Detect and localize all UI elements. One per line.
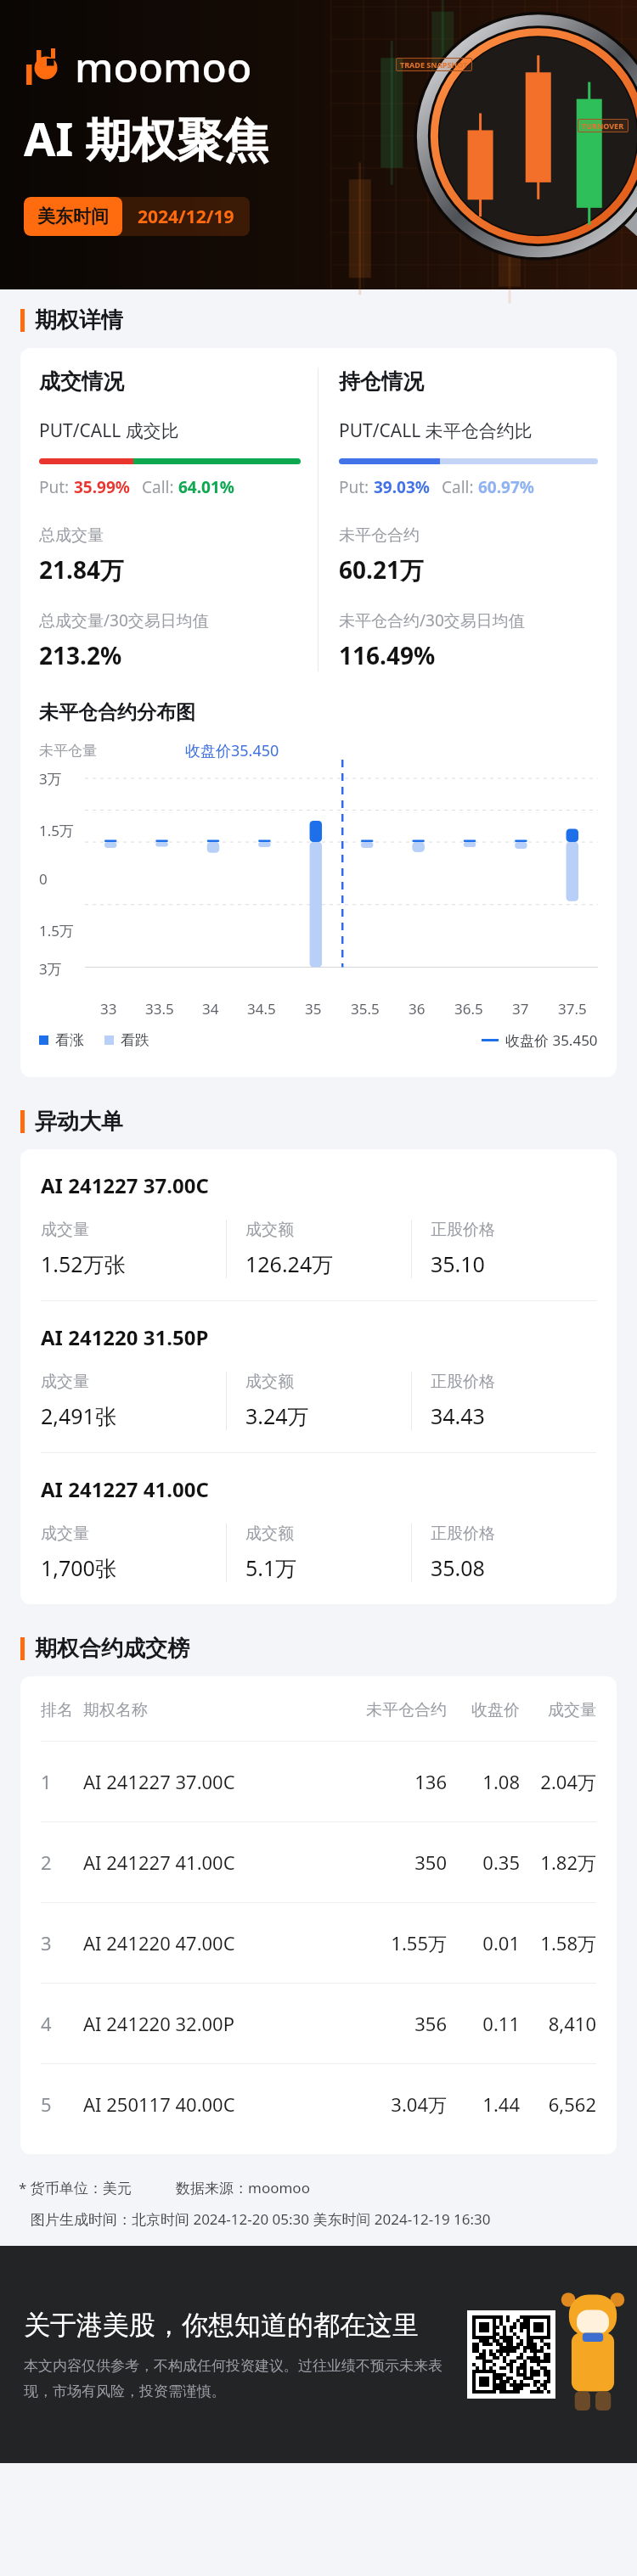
button[interactable]: AI 241220 31.50P [20, 1301, 617, 1453]
staticText: Put: [39, 476, 74, 498]
staticText: AI 241227 41.00C [83, 1849, 352, 1875]
staticText: PUT/CALL 未平仓合约比 [339, 418, 533, 443]
staticText: AI 期权聚焦 [24, 107, 269, 170]
staticText: 1.52万张 [41, 1249, 126, 1278]
staticText: 1 [41, 1769, 83, 1794]
staticText: 成交情况 [39, 368, 124, 395]
staticText: 1,700张 [41, 1553, 116, 1582]
staticText: 35.10 [431, 1249, 485, 1278]
staticText: 正股价格 [431, 1524, 495, 1544]
staticText: 未平仓合约/30交易日均值 [339, 609, 525, 631]
staticText: 3万 [39, 959, 62, 979]
staticText: 21.84万 [39, 553, 124, 586]
staticText: AI 241220 31.50P [41, 1323, 209, 1351]
staticText: 0.01 [447, 1930, 520, 1956]
staticText: 1.5万 [39, 921, 75, 940]
staticText: 收盘价35.450 [185, 740, 279, 761]
staticText: 看涨 [55, 1031, 84, 1049]
button[interactable]: AI 241227 37.00C [20, 1149, 617, 1301]
staticText: 5 [41, 2091, 83, 2117]
staticText: 未平仓合约 [339, 525, 420, 546]
staticText: 关于港美股，你想知道的都在这里 [24, 2309, 419, 2342]
staticText: 3.04万 [352, 2091, 447, 2117]
staticText: 37.5 [558, 999, 587, 1019]
staticText: AI 241227 37.00C [83, 1769, 352, 1794]
staticText: 36.5 [454, 999, 483, 1019]
staticText: 33.5 [145, 999, 174, 1019]
staticText: 3.24万 [245, 1401, 309, 1430]
staticText: 4 [41, 2011, 83, 2036]
staticText: 34.5 [247, 999, 276, 1019]
staticText: 未平仓合约 [352, 1700, 447, 1720]
staticText: 1.82万 [520, 1849, 596, 1875]
staticText: 3 [41, 1930, 83, 1956]
button[interactable]: moomoo logo [25, 39, 252, 94]
staticText: 1.44 [447, 2091, 520, 2117]
button[interactable]: 3 [41, 1903, 596, 1983]
staticText: 异动大单 [35, 1108, 123, 1136]
staticText: moomoo [75, 39, 252, 94]
staticText: 2,491张 [41, 1401, 116, 1430]
staticText: Call: [442, 476, 478, 498]
staticText: 正股价格 [431, 1372, 495, 1392]
staticText: * 货币单位：美元 [19, 2178, 132, 2197]
staticText: 33 [100, 999, 117, 1019]
staticText: 正股价格 [431, 1220, 495, 1240]
staticText: 0 [39, 869, 48, 889]
staticText: AI 250117 40.00C [83, 2091, 352, 2117]
button[interactable]: QR code [472, 2315, 550, 2394]
staticText: 356 [352, 2011, 447, 2036]
staticText: 2 [41, 1849, 83, 1875]
staticText: 未平仓合约分布图 [39, 700, 195, 725]
staticText: 本文内容仅供参考，不构成任何投资建议。过往业绩不预示未来表现，市场有风险，投资需… [24, 2357, 448, 2400]
staticText: 126.24万 [245, 1249, 334, 1278]
staticText: AI 241227 41.00C [41, 1475, 209, 1503]
staticText: 美东时间 [37, 205, 109, 227]
staticText: 3万 [39, 769, 62, 789]
staticText: 期权详情 [35, 306, 123, 334]
staticText: 未平仓量 [39, 742, 97, 760]
staticText: 排名 [41, 1700, 83, 1720]
staticText: 期权合约成交榜 [35, 1635, 189, 1663]
staticText: AI 241220 32.00P [83, 2011, 352, 2036]
staticText: 8,410 [520, 2011, 596, 2036]
staticText: 收盘价 35.450 [505, 1030, 598, 1050]
staticText: 6,562 [520, 2091, 596, 2117]
staticText: 成交量 [520, 1700, 596, 1720]
staticText: 5.1万 [245, 1553, 297, 1582]
staticText: 0.35 [447, 1849, 520, 1875]
staticText: PUT/CALL 成交比 [39, 418, 179, 443]
staticText: 成交量 [41, 1220, 89, 1240]
staticText: 2024/12/19 [138, 205, 234, 229]
staticText: 37 [512, 999, 529, 1019]
button[interactable]: 美东时间 [24, 197, 250, 236]
staticText: 35.08 [431, 1553, 485, 1582]
button[interactable]: 4 [41, 1984, 596, 2063]
staticText: 39.03% [374, 476, 430, 498]
staticText: 数据来源：moomoo [176, 2178, 310, 2197]
staticText: 收盘价 [447, 1700, 520, 1720]
staticText: 0.11 [447, 2011, 520, 2036]
staticText: 136 [352, 1769, 447, 1794]
button[interactable]: 5 [41, 2064, 596, 2144]
staticText: 60.97% [478, 476, 534, 498]
staticText: AI 241227 37.00C [41, 1171, 209, 1199]
staticText: 成交额 [245, 1372, 294, 1392]
staticText: 成交额 [245, 1524, 294, 1544]
staticText: 1.58万 [520, 1930, 596, 1956]
button[interactable]: 1 [41, 1742, 596, 1821]
staticText: 34.43 [431, 1401, 485, 1430]
staticText: 36 [409, 999, 426, 1019]
staticText: 1.55万 [352, 1930, 447, 1956]
staticText: 213.2% [39, 639, 122, 671]
staticText: 持仓情况 [339, 368, 424, 395]
staticText: 350 [352, 1849, 447, 1875]
staticText: TRADE SNAPSHOT [400, 59, 468, 70]
staticText: 成交量 [41, 1524, 89, 1544]
staticText: 64.01% [178, 476, 234, 498]
staticText: TURNOVER [582, 121, 624, 131]
button[interactable]: AI 241227 41.00C [20, 1453, 617, 1604]
button[interactable]: 2 [41, 1822, 596, 1902]
staticText: 图片生成时间：北京时间 2024-12-20 05:30 美东时间 2024-1… [31, 2209, 491, 2229]
staticText: 期权名称 [83, 1700, 352, 1720]
